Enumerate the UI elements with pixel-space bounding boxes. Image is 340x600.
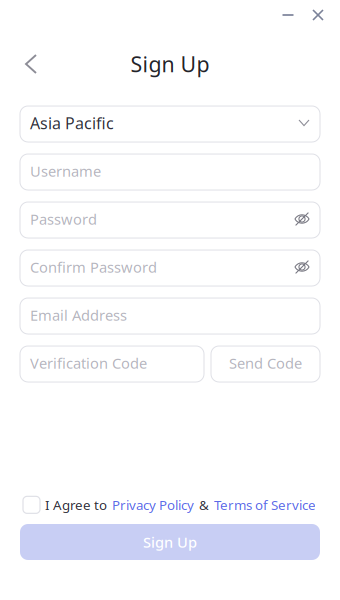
staticText: Verification Code [30, 353, 147, 373]
staticText: Sign Up [143, 532, 197, 552]
button[interactable]: Agree to terms [23, 496, 40, 513]
button[interactable]: Show password [294, 211, 310, 227]
staticText: & [199, 496, 209, 514]
button[interactable]: Privacy Policy [112, 496, 194, 514]
button[interactable]: Show confirm password [294, 259, 310, 275]
button[interactable]: Email Address [20, 298, 320, 334]
button[interactable]: Sign Up [20, 524, 320, 560]
button[interactable]: Close [303, 4, 333, 26]
staticText: Password [30, 209, 97, 229]
staticText: I Agree to [45, 496, 107, 514]
button[interactable]: Minimize [273, 4, 303, 26]
button[interactable]: Verification Code [20, 346, 204, 382]
staticText: Confirm Password [30, 257, 157, 277]
staticText: Email Address [30, 305, 127, 325]
staticText: Sign Up [130, 50, 209, 78]
button[interactable]: Back [16, 49, 46, 79]
button[interactable]: Terms of Service [214, 496, 316, 514]
staticText: Privacy Policy [112, 496, 194, 514]
button[interactable]: Username [20, 154, 320, 190]
button[interactable]: Send Code [211, 346, 320, 382]
button[interactable]: Asia Pacific [20, 106, 320, 142]
staticText: Asia Pacific [30, 112, 114, 134]
staticText: Terms of Service [214, 496, 316, 514]
staticText: Send Code [229, 353, 302, 373]
staticText: Username [30, 161, 101, 181]
